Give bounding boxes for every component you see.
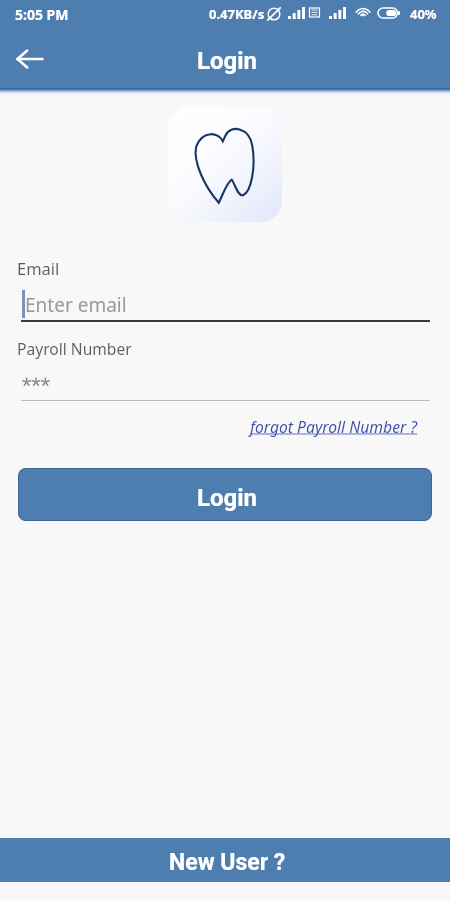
staticText: Enter email <box>25 292 127 318</box>
staticText: Login <box>197 47 258 75</box>
staticText: 40% <box>410 5 437 23</box>
button[interactable] <box>0 370 450 404</box>
staticText: New User ? <box>169 849 286 876</box>
staticText: 5:05 PM <box>15 5 69 24</box>
staticText: forgot Payroll Number ? <box>250 416 418 437</box>
button[interactable]: forgot Payroll Number ? <box>246 413 422 439</box>
button[interactable]: Enter email <box>0 288 450 324</box>
button[interactable]: New User ? <box>0 838 450 882</box>
staticText: Payroll Number <box>17 338 132 359</box>
staticText: Login <box>197 484 258 512</box>
staticText: 0.47KB/s <box>209 5 265 23</box>
button[interactable]: Login <box>18 468 432 521</box>
button[interactable]: Back <box>8 37 52 81</box>
staticText: Email <box>17 257 60 279</box>
